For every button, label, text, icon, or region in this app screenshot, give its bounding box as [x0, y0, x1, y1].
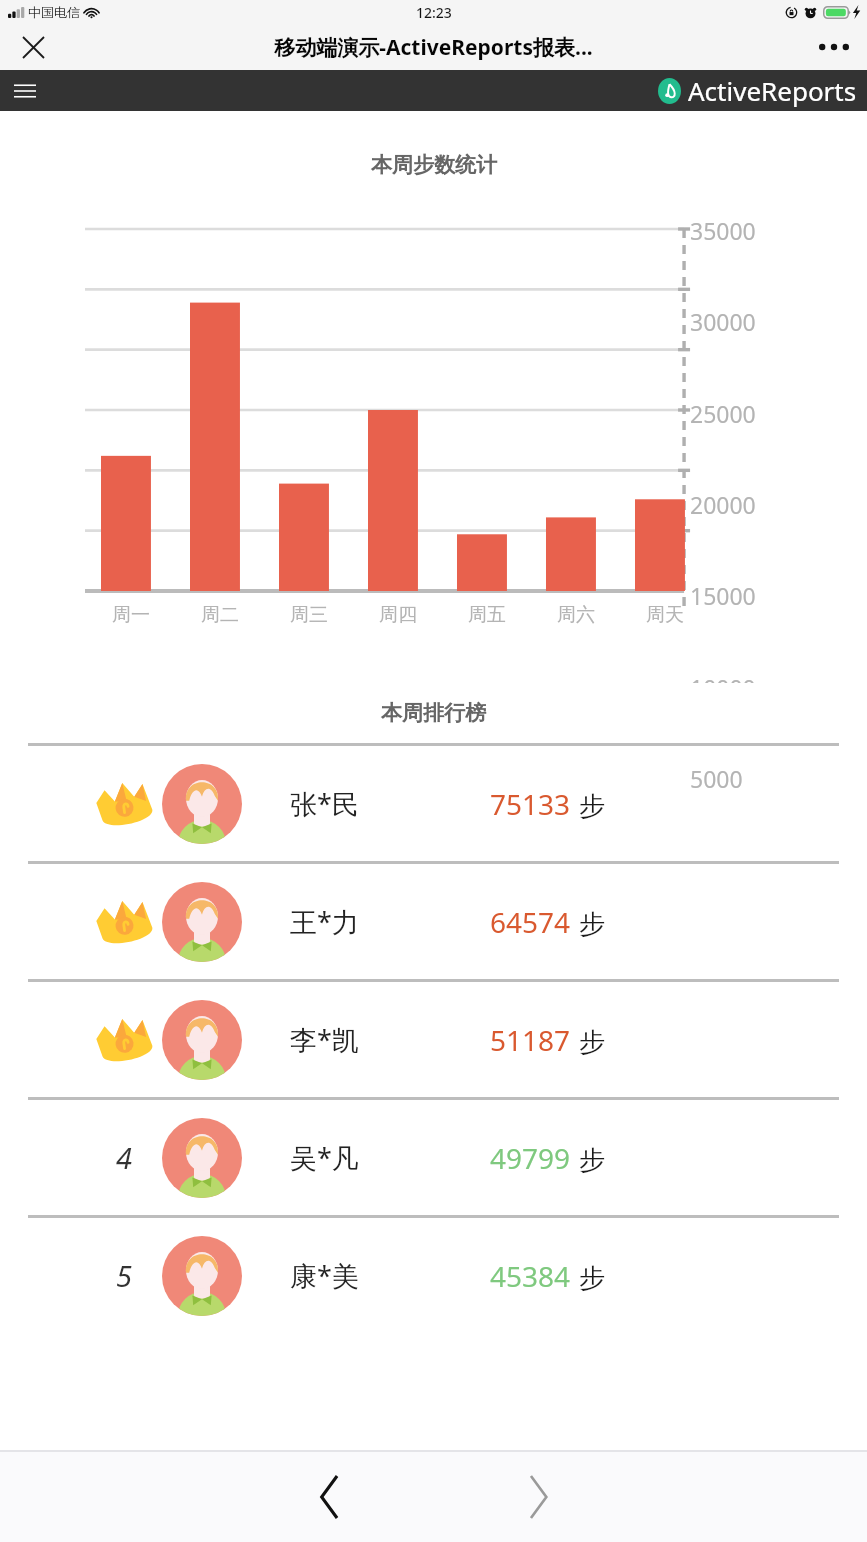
staticText: 康*美: [290, 1257, 490, 1294]
staticText: 吴*凡: [290, 1139, 490, 1176]
button[interactable]: 李*凯: [0, 982, 867, 1097]
button[interactable]: Next page: [490, 1452, 586, 1542]
button[interactable]: Menu: [4, 70, 46, 111]
button[interactable]: More options: [811, 24, 857, 70]
staticText: 李*凯: [290, 1021, 490, 1058]
button[interactable]: 4: [0, 1100, 867, 1215]
staticText: 75133: [490, 785, 571, 823]
button[interactable]: 王*力: [0, 864, 867, 979]
button[interactable]: Close: [10, 24, 56, 70]
staticText: 张*民: [290, 785, 490, 822]
staticText: 30000: [690, 306, 756, 337]
staticText: 步: [579, 908, 605, 941]
staticText: 64574: [490, 903, 571, 941]
staticText: 步: [579, 790, 605, 823]
staticText: 49799: [490, 1139, 571, 1177]
staticText: 王*力: [290, 903, 490, 940]
staticText: 本周步数统计: [371, 152, 497, 178]
staticText: 45384: [490, 1257, 571, 1295]
staticText: 20000: [690, 489, 756, 520]
staticText: 周一: [112, 603, 150, 627]
staticText: 中国电信: [28, 4, 80, 20]
staticText: 51187: [490, 1021, 571, 1059]
staticText: 本周排行榜: [381, 700, 486, 726]
staticText: 5: [116, 1256, 132, 1295]
staticText: 周三: [290, 603, 328, 627]
staticText: 周四: [379, 603, 417, 627]
staticText: 步: [579, 1026, 605, 1059]
staticText: 35000: [690, 215, 756, 246]
staticText: ActiveReports: [688, 73, 857, 108]
staticText: 25000: [690, 398, 756, 429]
button[interactable]: 5: [0, 1218, 867, 1333]
staticText: 周二: [201, 603, 239, 627]
staticText: 周五: [468, 603, 506, 627]
staticText: 5000: [690, 763, 743, 794]
staticText: 15000: [690, 580, 756, 611]
button[interactable]: 张*民: [0, 746, 867, 861]
button[interactable]: Previous page: [282, 1452, 378, 1542]
staticText: 步: [579, 1262, 605, 1295]
staticText: 12:23: [416, 3, 452, 22]
staticText: 周天: [646, 603, 684, 627]
staticText: 周六: [557, 603, 595, 627]
staticText: 4: [116, 1138, 132, 1177]
staticText: 10000: [690, 672, 756, 703]
staticText: 步: [579, 1144, 605, 1177]
staticText: 移动端演示-ActiveReports报表...: [274, 33, 593, 62]
